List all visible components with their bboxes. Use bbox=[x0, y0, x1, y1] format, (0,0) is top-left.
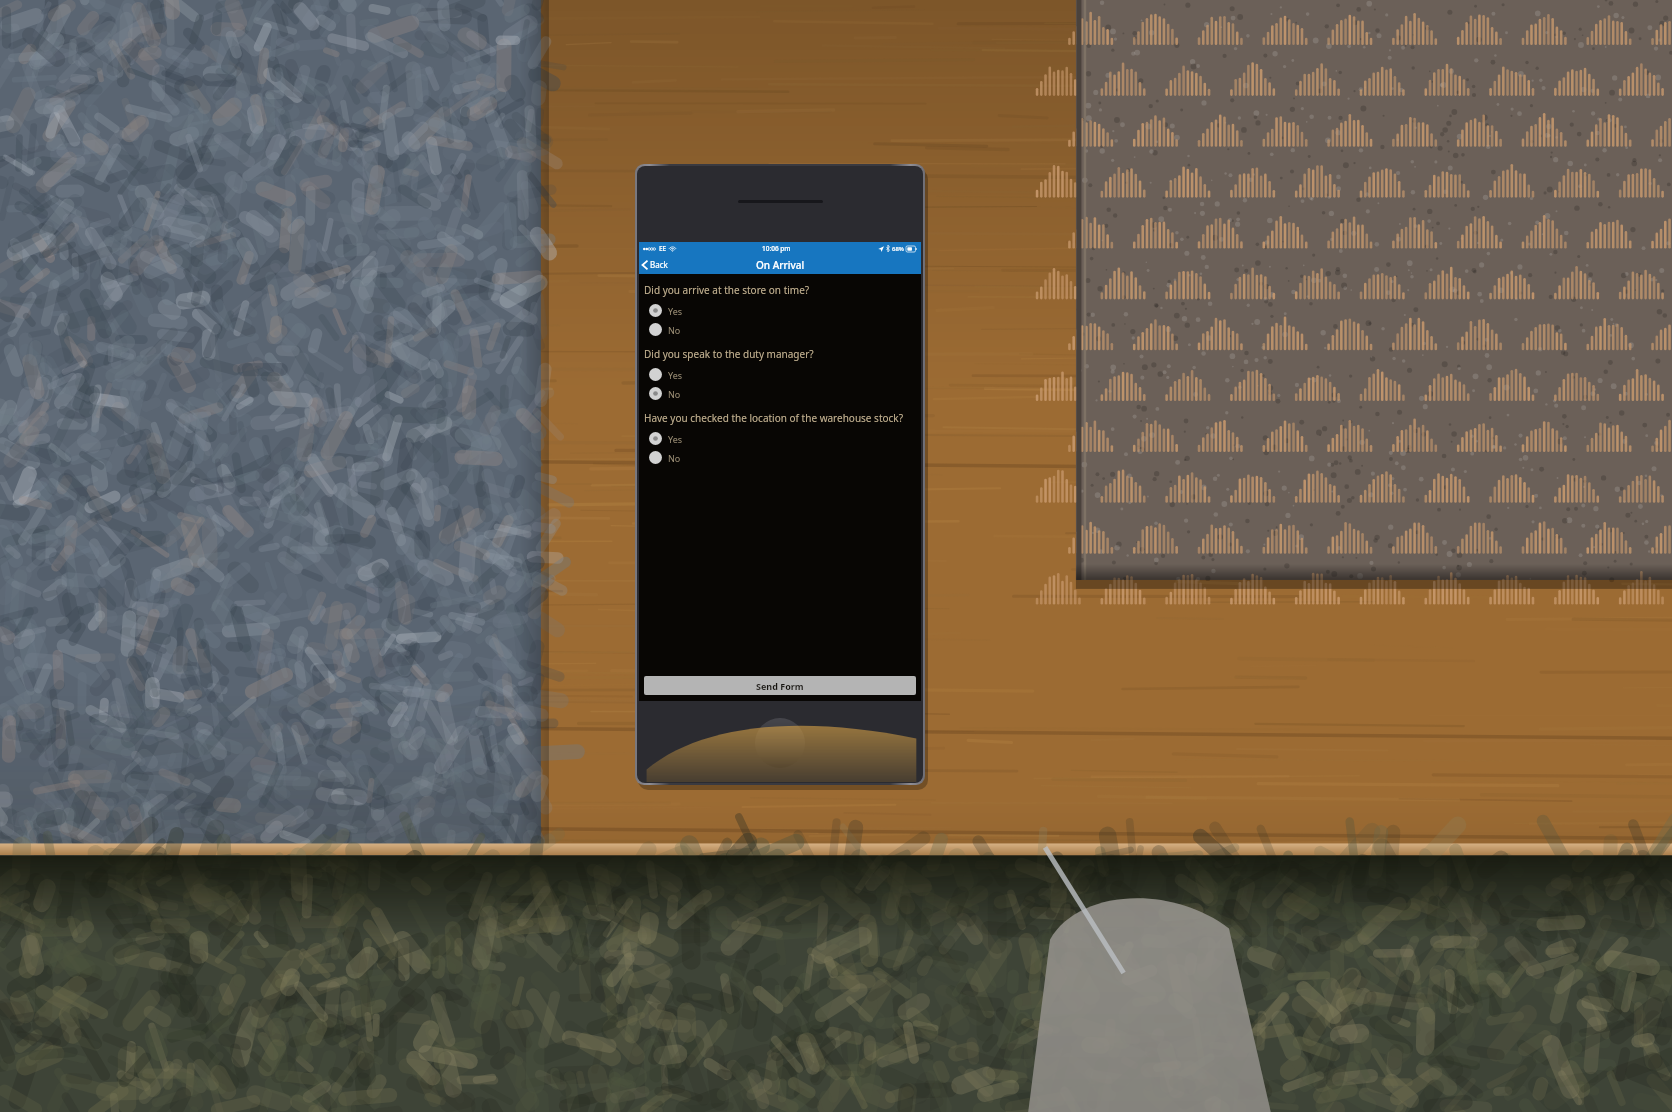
staticText: Yes bbox=[668, 369, 683, 381]
staticText: EE bbox=[659, 244, 667, 253]
staticText: Back bbox=[650, 259, 668, 270]
staticText: No bbox=[668, 452, 681, 464]
button[interactable]: Back bbox=[639, 256, 674, 273]
staticText: 68% bbox=[892, 245, 904, 253]
button[interactable]: No bbox=[644, 322, 916, 337]
staticText: Did you speak to the duty manager? bbox=[644, 347, 814, 361]
staticText: Send Form bbox=[756, 680, 804, 692]
staticText: On Arrival bbox=[756, 258, 805, 272]
button[interactable]: Yes bbox=[644, 367, 916, 382]
staticText: 10:06 pm bbox=[762, 244, 791, 253]
staticText: No bbox=[668, 324, 681, 336]
staticText: Yes bbox=[668, 433, 683, 445]
button[interactable]: Send Form bbox=[644, 676, 916, 695]
button[interactable]: No bbox=[644, 450, 916, 465]
staticText: Have you checked the location of the war… bbox=[644, 411, 904, 425]
staticText: No bbox=[668, 388, 681, 400]
staticText: Yes bbox=[668, 305, 683, 317]
button[interactable]: No bbox=[644, 386, 916, 401]
button[interactable]: Yes bbox=[644, 431, 916, 446]
staticText: Did you arrive at the store on time? bbox=[644, 283, 810, 297]
button[interactable]: Yes bbox=[644, 303, 916, 318]
